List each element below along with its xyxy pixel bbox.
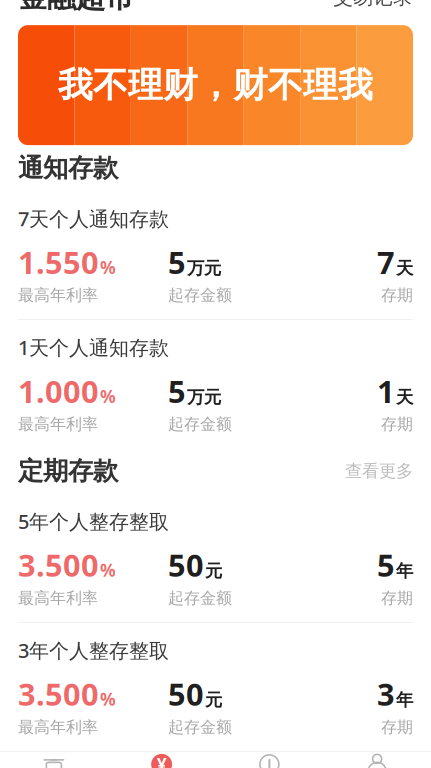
staticText: 元 <box>205 689 222 711</box>
staticText: 我不理财，财不理我 <box>58 64 373 106</box>
staticText: % <box>100 559 116 582</box>
staticText: 金融超市 <box>18 0 134 15</box>
button[interactable]: 我不理财，财不理我 <box>0 25 431 145</box>
staticText: 3.500 <box>18 545 99 585</box>
staticText: 最高年利率 <box>18 717 98 737</box>
staticText: 3.500 <box>18 673 99 714</box>
staticText: 1天个人通知存款 <box>18 334 169 361</box>
staticText: 存期 <box>381 414 413 434</box>
staticText: 5 <box>168 242 186 282</box>
staticText: 起存金额 <box>168 588 232 608</box>
staticText: 1.550 <box>18 242 99 282</box>
staticText: 天 <box>396 386 413 408</box>
staticText: 年 <box>396 560 413 582</box>
button[interactable]: 1天个人通知存款 <box>0 320 431 448</box>
staticText: 最高年利率 <box>18 588 98 608</box>
staticText: 查看更多 <box>345 460 413 482</box>
staticText: % <box>100 256 116 279</box>
staticText: % <box>100 687 116 710</box>
staticText: 50 <box>168 545 204 585</box>
staticText: 万元 <box>187 257 221 279</box>
staticText: 3 <box>377 673 395 714</box>
staticText: 1 <box>377 371 395 411</box>
button[interactable]: 7天个人通知存款 <box>0 191 431 319</box>
button[interactable]: ¥ <box>108 747 216 768</box>
staticText: 起存金额 <box>168 717 232 737</box>
staticText: 存期 <box>381 588 413 608</box>
staticText: 7天个人通知存款 <box>18 205 169 232</box>
staticText: 天 <box>396 257 413 279</box>
staticText: ¥ <box>157 753 167 768</box>
staticText: % <box>100 385 116 408</box>
staticText: 元 <box>205 560 222 582</box>
staticText: 最高年利率 <box>18 414 98 434</box>
staticText: 存期 <box>381 717 413 737</box>
staticText: 起存金额 <box>168 285 232 305</box>
staticText: 定期存款 <box>18 455 118 486</box>
staticText: 存期 <box>381 285 413 305</box>
staticText: 7 <box>377 242 395 282</box>
button[interactable]: 发现 <box>215 747 323 768</box>
button[interactable]: 首页 <box>0 747 108 768</box>
staticText: 起存金额 <box>168 414 232 434</box>
staticText: 5 <box>168 371 186 411</box>
button[interactable]: 查看更多 <box>345 460 413 482</box>
staticText: 交易记录 <box>333 0 413 9</box>
staticText: 通知存款 <box>18 153 118 184</box>
staticText: 50 <box>168 673 204 714</box>
staticText: 5 <box>377 545 395 585</box>
button[interactable]: 5年个人整存整取 <box>0 494 431 622</box>
button[interactable]: 我的 <box>323 747 431 768</box>
button[interactable]: 交易记录 <box>333 0 413 9</box>
staticText: 5年个人整存整取 <box>18 508 169 535</box>
button[interactable]: 3年个人整存整取 <box>0 623 431 751</box>
staticText: 万元 <box>187 386 221 408</box>
staticText: 3年个人整存整取 <box>18 637 169 663</box>
staticText: 年 <box>396 689 413 711</box>
staticText: 1.000 <box>18 371 99 411</box>
staticText: 最高年利率 <box>18 285 98 305</box>
